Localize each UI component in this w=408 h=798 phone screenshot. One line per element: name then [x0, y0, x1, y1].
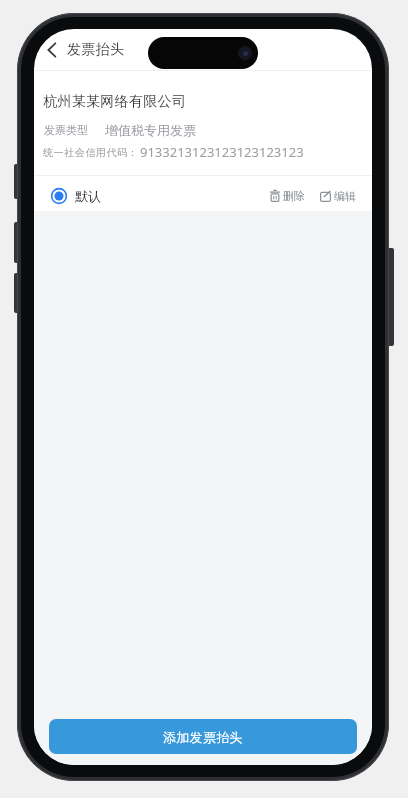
staticText: 杭州某某网络有限公司	[43, 93, 186, 111]
button[interactable]: 编辑	[320, 188, 356, 204]
staticText: 9133213123123123123123	[140, 143, 304, 161]
staticText: 编辑	[334, 189, 356, 203]
staticText: 增值税专用发票	[105, 122, 196, 138]
staticText: 默认	[75, 188, 101, 204]
staticText: 发票类型	[44, 123, 88, 137]
button[interactable]: 默认	[51, 187, 101, 205]
staticText: 添加发票抬头	[163, 729, 243, 745]
staticText: 删除	[283, 189, 305, 203]
button[interactable]: 添加发票抬头	[49, 719, 357, 754]
button[interactable]: 删除	[270, 188, 305, 204]
staticText: 统一社会信用代码：	[43, 146, 139, 159]
staticText: 发票抬头	[67, 41, 125, 59]
button[interactable]	[46, 42, 58, 58]
